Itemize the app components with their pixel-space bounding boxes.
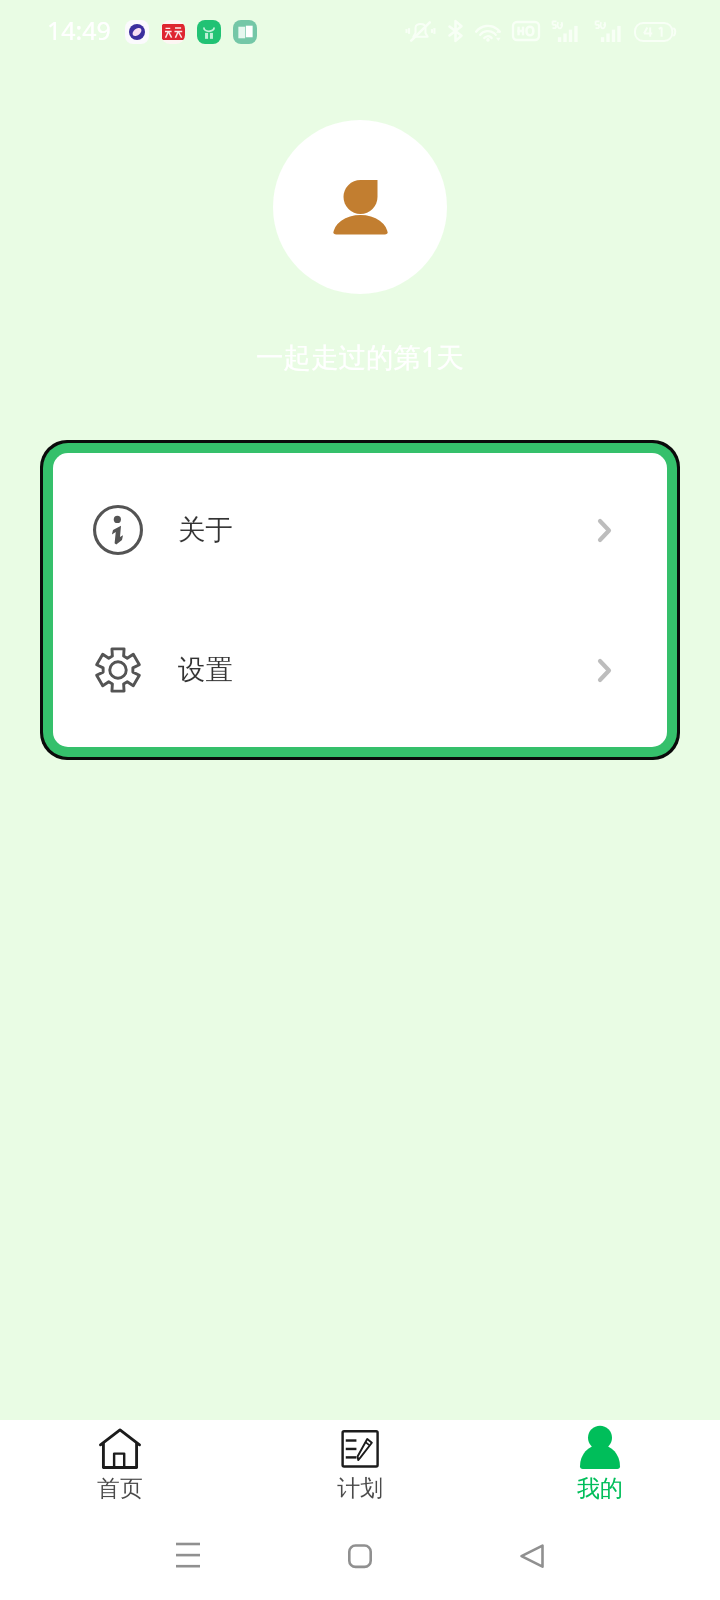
staticText: 关于 xyxy=(178,513,233,548)
staticText: 我的 xyxy=(577,1474,623,1503)
button[interactable]: 关于 xyxy=(53,495,667,565)
button[interactable]: 我的 xyxy=(480,1420,720,1520)
button[interactable]: 首页 xyxy=(0,1420,240,1520)
button[interactable]: Recent apps xyxy=(176,1538,200,1570)
staticText: 14:49 xyxy=(47,13,111,47)
button[interactable]: Back xyxy=(520,1538,544,1570)
button[interactable]: Home xyxy=(348,1538,372,1570)
button[interactable]: 设置 xyxy=(53,635,667,705)
button[interactable]: Profile avatar xyxy=(273,120,447,294)
button[interactable]: 计划 xyxy=(240,1420,480,1520)
staticText: 一起走过的第1天 xyxy=(0,338,720,376)
staticText: 首页 xyxy=(97,1474,143,1503)
staticText: 计划 xyxy=(337,1474,383,1503)
staticText: 设置 xyxy=(178,653,233,688)
